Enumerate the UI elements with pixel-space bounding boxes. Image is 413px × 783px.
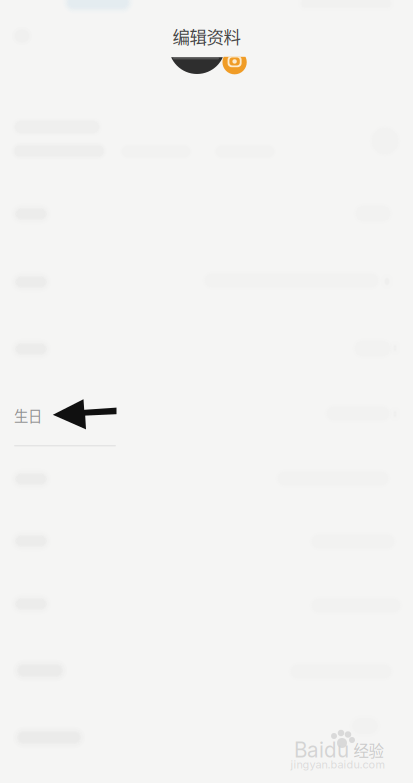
button[interactable]: 编辑资料 — [151, 20, 261, 52]
staticText: Baidu — [294, 737, 349, 762]
staticText: 编辑资料 — [172, 24, 240, 49]
staticText: 经验 — [353, 739, 383, 761]
button[interactable]: 生日 — [14, 404, 54, 426]
staticText: 生日 — [14, 405, 42, 426]
staticText: jingyan.baidu.com — [290, 758, 385, 771]
button[interactable]: Change profile photo — [0, 0, 413, 110]
